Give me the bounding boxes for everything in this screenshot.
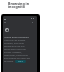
button[interactable]: Got it bbox=[15, 60, 26, 63]
staticText: Browsing in incognito bbox=[8, 1, 29, 9]
staticText: Now you can browse privately, and other … bbox=[4, 39, 31, 63]
staticText: Got it bbox=[18, 60, 23, 63]
staticText: You’ve gone Incognito bbox=[4, 35, 29, 38]
button[interactable]: Incognito bbox=[5, 28, 9, 32]
